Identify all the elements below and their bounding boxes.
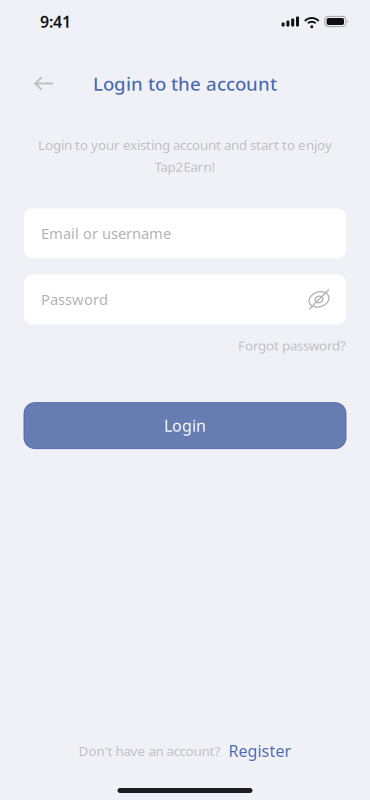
- staticText: Email or username: [41, 224, 171, 243]
- button[interactable]: Email or username: [24, 208, 346, 258]
- button[interactable]: Password: [24, 274, 304, 324]
- staticText: Forgot password?: [238, 336, 346, 354]
- staticText: Login: [164, 415, 206, 436]
- button[interactable]: Login: [24, 403, 346, 449]
- staticText: Don't have an account?: [78, 742, 220, 760]
- staticText: Register: [228, 740, 291, 761]
- button[interactable]: Forgot password?: [238, 336, 346, 354]
- staticText: Password: [41, 290, 108, 309]
- staticText: 9:41: [40, 11, 71, 32]
- staticText: Login to your existing account and start…: [38, 136, 332, 154]
- button[interactable]: Register: [228, 740, 291, 761]
- staticText: Login to the account: [93, 71, 277, 96]
- button[interactable]: Show password: [304, 274, 334, 324]
- button[interactable]: Back: [22, 63, 66, 103]
- staticText: Tap2Earn!: [154, 158, 215, 175]
